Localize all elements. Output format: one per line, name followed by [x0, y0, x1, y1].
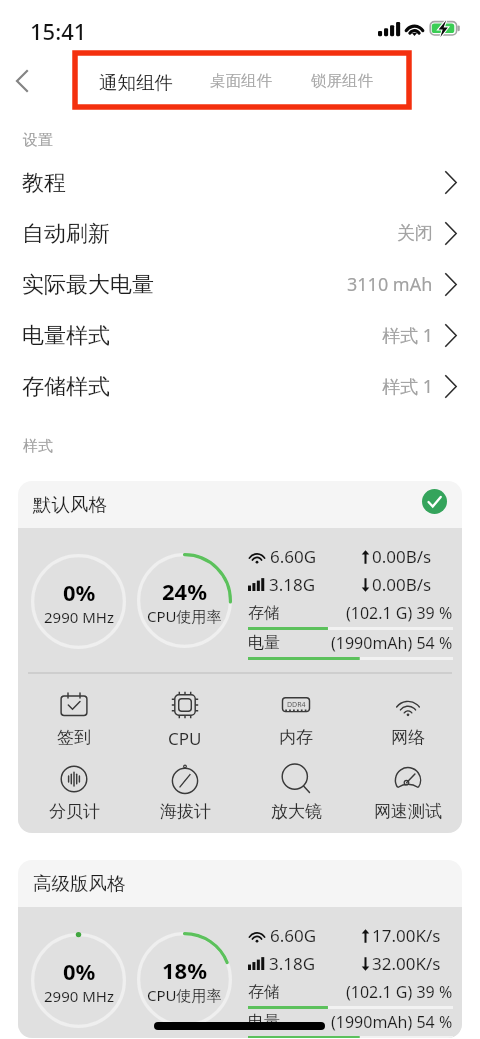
staticText: CPU使用率	[147, 606, 222, 626]
staticText: 存储	[248, 603, 280, 623]
staticText: 18%	[162, 955, 208, 985]
staticText: 2990 MHz	[44, 607, 114, 627]
button[interactable]: 教程	[0, 157, 480, 208]
staticText: 6.60G	[270, 924, 317, 947]
staticText: 0%	[63, 577, 96, 607]
button[interactable]: CPU	[139, 685, 231, 755]
button[interactable]: 放大镜	[250, 759, 342, 829]
staticText: 高级版风格	[33, 872, 126, 895]
button[interactable]: 锁屏组件	[305, 65, 379, 97]
staticText: 0.00B/s	[372, 573, 432, 596]
button[interactable]: 默认风格	[18, 481, 462, 833]
staticText: 海拔计	[160, 801, 211, 822]
staticText: 32.00K/s	[372, 952, 441, 975]
button[interactable]: 电量样式	[0, 310, 480, 361]
button[interactable]: 签到	[28, 685, 120, 755]
button[interactable]: DDR4	[250, 685, 342, 755]
button[interactable]: 高级版风格	[18, 860, 462, 1038]
staticText: 0%	[63, 956, 96, 986]
staticText: 默认风格	[33, 493, 107, 516]
staticText: 设置	[23, 131, 53, 150]
staticText: 2990 MHz	[44, 986, 114, 1006]
staticText: 0.00B/s	[372, 545, 432, 568]
staticText: CPU	[168, 727, 202, 750]
staticText: (102.1 G) 39 %	[346, 981, 453, 1003]
button[interactable]: 通知组件	[93, 65, 179, 100]
staticText: 电量	[248, 1012, 280, 1032]
button[interactable]: 存储样式	[0, 361, 480, 412]
staticText: 3.18G	[269, 573, 316, 596]
staticText: DDR4	[287, 700, 306, 710]
button[interactable]: 自动刷新	[0, 208, 480, 259]
staticText: 17.00K/s	[372, 924, 441, 947]
staticText: 锁屏组件	[311, 71, 373, 91]
staticText: 通知组件	[99, 71, 173, 94]
button[interactable]: 海拔计	[139, 759, 231, 829]
staticText: 6.60G	[270, 545, 317, 568]
staticText: 实际最大电量	[22, 271, 154, 299]
staticText: 存储样式	[22, 373, 110, 401]
staticText: 电量样式	[22, 322, 110, 350]
staticText: 教程	[22, 169, 66, 197]
staticText: 15:41	[30, 16, 87, 46]
staticText: 自动刷新	[22, 220, 110, 248]
staticText: CPU使用率	[147, 985, 222, 1005]
staticText: 关闭	[397, 222, 433, 245]
staticText: 放大镜	[271, 801, 322, 822]
staticText: 电量	[248, 633, 280, 653]
staticText: (1990mAh) 54 %	[331, 1011, 453, 1033]
button[interactable]: 网络	[362, 685, 454, 755]
staticText: 样式 1	[382, 374, 433, 399]
button[interactable]: 实际最大电量	[0, 259, 480, 310]
staticText: 内存	[279, 727, 313, 748]
staticText: (1990mAh) 54 %	[331, 632, 453, 654]
staticText: 3.18G	[269, 952, 316, 975]
button[interactable]: 网速测试	[362, 759, 454, 829]
button[interactable]: 分贝计	[28, 759, 120, 829]
staticText: 分贝计	[49, 801, 100, 822]
button[interactable]: 桌面组件	[204, 65, 278, 97]
staticText: 桌面组件	[210, 71, 272, 91]
staticText: (102.1 G) 39 %	[346, 602, 453, 624]
staticText: 网络	[391, 727, 425, 748]
staticText: 样式	[23, 437, 53, 456]
button[interactable]: Back	[0, 59, 44, 103]
staticText: 存储	[248, 982, 280, 1002]
staticText: 样式 1	[382, 323, 433, 348]
staticText: 3110 mAh	[347, 272, 433, 297]
staticText: 签到	[57, 727, 91, 748]
staticText: 24%	[162, 576, 208, 606]
staticText: 网速测试	[374, 801, 442, 822]
